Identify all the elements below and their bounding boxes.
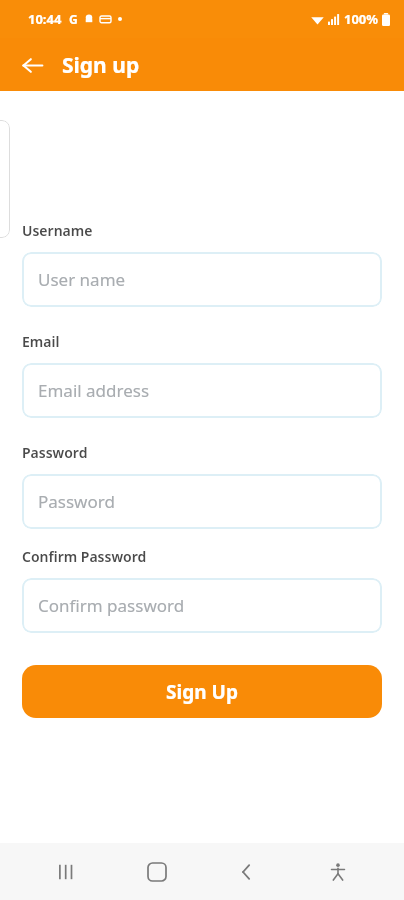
staticText: Sign Up bbox=[166, 679, 238, 705]
button[interactable]: User name bbox=[22, 252, 382, 307]
button[interactable]: Sign Up bbox=[22, 665, 382, 718]
button[interactable]: Password bbox=[22, 474, 382, 529]
staticText: 10:44 bbox=[28, 10, 62, 28]
staticText: Password bbox=[22, 443, 88, 462]
staticText: 100% bbox=[344, 10, 379, 28]
staticText: G bbox=[69, 11, 78, 27]
staticText: Sign up bbox=[62, 51, 140, 80]
button[interactable]: Back bbox=[14, 47, 50, 83]
button[interactable]: Confirm password bbox=[22, 578, 382, 633]
staticText: User name bbox=[38, 268, 126, 291]
staticText: Password bbox=[38, 490, 115, 513]
button[interactable]: Email address bbox=[22, 363, 382, 418]
button[interactable]: Accessibility bbox=[314, 848, 362, 896]
button[interactable]: Back bbox=[223, 848, 271, 896]
button[interactable]: Home bbox=[133, 848, 181, 896]
staticText: Username bbox=[22, 221, 93, 240]
staticText: Email address bbox=[38, 379, 150, 402]
staticText: Confirm password bbox=[38, 594, 185, 617]
staticText: Confirm Password bbox=[22, 547, 147, 566]
staticText: Email bbox=[22, 332, 60, 351]
button[interactable]: Recent apps bbox=[42, 848, 90, 896]
